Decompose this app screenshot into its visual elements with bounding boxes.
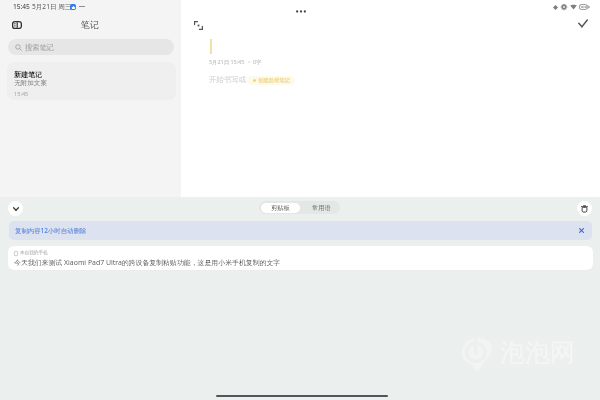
staticText: 泡泡网	[500, 337, 575, 368]
staticText: 创建思维笔记	[258, 77, 290, 84]
button[interactable]: 来自我的手机	[8, 246, 593, 270]
button[interactable]: Dismiss	[577, 226, 586, 235]
staticText: 0字	[253, 58, 262, 65]
button[interactable]: 常用语	[302, 203, 340, 213]
button[interactable]: 搜索笔记	[8, 39, 174, 55]
staticText: 15:45	[13, 2, 30, 11]
staticText: 笔记	[81, 19, 99, 30]
staticText: 15:45	[14, 90, 29, 98]
staticText: 今天我们来测试 Xiaomi Pad7 Ultra的跨设备复制粘贴功能，这是用小…	[14, 258, 281, 267]
staticText: 开始书写或	[209, 75, 246, 84]
button[interactable]: Done	[578, 19, 588, 28]
button[interactable]: Collapse	[8, 201, 23, 216]
button[interactable]: 创建思维笔记	[247, 76, 295, 85]
button[interactable]: Expand	[194, 21, 203, 30]
staticText: 常用语	[312, 204, 331, 212]
staticText: 搜索笔记	[25, 43, 54, 52]
button[interactable]: Toggle sidebar	[12, 21, 22, 29]
staticText: 5月21日 15:45	[209, 58, 245, 65]
staticText: 复制内容12小时自动删除	[15, 226, 87, 235]
button[interactable]: More options	[293, 5, 309, 18]
button[interactable]: 剪贴板	[261, 203, 300, 213]
button[interactable]: Delete all	[577, 201, 592, 216]
button[interactable]: 新建笔记	[7, 62, 176, 100]
staticText: 来自我的手机	[20, 250, 48, 256]
staticText: 剪贴板	[271, 204, 290, 212]
staticText: 新建笔记	[14, 70, 42, 79]
staticText: 无附加文案	[14, 79, 47, 87]
staticText: 5月21日 周三	[32, 2, 72, 11]
